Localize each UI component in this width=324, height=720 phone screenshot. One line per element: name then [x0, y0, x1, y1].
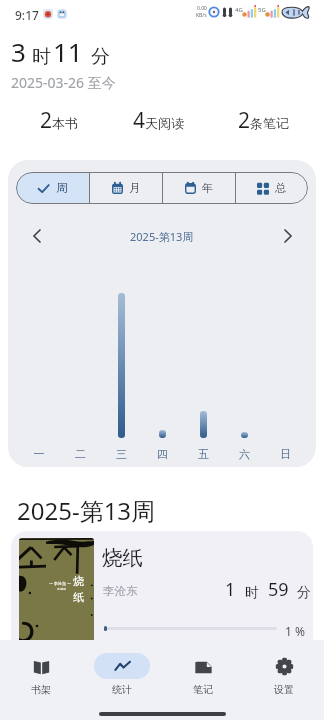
button[interactable]: 周	[16, 172, 89, 204]
staticText: 月	[129, 181, 141, 195]
staticText: 4天阅读	[133, 106, 185, 135]
staticText: 3	[11, 34, 26, 69]
staticText: 5G	[258, 6, 266, 14]
staticText: 2条笔记	[238, 106, 290, 135]
staticText: 分	[91, 45, 110, 69]
staticText: 书架	[31, 683, 51, 696]
staticText: 소설집	[57, 587, 66, 591]
button[interactable]: 上一周	[25, 225, 47, 247]
staticText: 烧	[73, 574, 84, 588]
staticText: 笔记	[193, 683, 213, 696]
staticText: 时	[245, 584, 259, 602]
staticText: 1	[225, 577, 236, 602]
button[interactable]: 2本书	[40, 106, 79, 135]
button[interactable]: 烧	[11, 531, 313, 661]
staticText: 2025-第13周	[17, 494, 156, 527]
button[interactable]: 设置	[243, 648, 324, 700]
staticText: 周	[56, 181, 68, 195]
staticText: 六	[224, 447, 265, 461]
staticText: 2本书	[40, 106, 79, 135]
staticText: 2025-第13周	[130, 229, 194, 244]
staticText: 1 %	[285, 623, 305, 639]
staticText: 设置	[274, 683, 294, 696]
staticText: 日	[265, 447, 306, 461]
staticText: 59	[268, 577, 289, 602]
button[interactable]: 笔记	[162, 648, 243, 700]
staticText: 统计	[112, 683, 132, 696]
staticText: 四	[142, 447, 183, 461]
staticText: 2025-03-26 至今	[11, 73, 116, 92]
staticText: 李沧东	[103, 584, 138, 598]
staticText: 三	[101, 447, 142, 461]
staticText: 时	[32, 45, 51, 69]
staticText: 纸	[73, 590, 84, 604]
staticText: 一 李沧东 一	[49, 581, 72, 586]
staticText: KB/s	[196, 12, 207, 19]
button[interactable]: 月	[90, 172, 162, 204]
staticText: 9:17	[15, 7, 39, 23]
staticText: 五	[183, 447, 224, 461]
staticText: 一	[18, 447, 60, 461]
staticText: 烧纸	[102, 545, 143, 571]
button[interactable]: 4天阅读	[133, 106, 185, 135]
staticText: 分	[297, 584, 311, 602]
button[interactable]: 总	[236, 172, 308, 204]
staticText: 年	[202, 181, 214, 195]
button[interactable]: 下一周	[277, 225, 299, 247]
staticText: 11	[53, 34, 83, 69]
button[interactable]: 2条笔记	[238, 106, 290, 135]
staticText: 总	[275, 181, 287, 195]
button[interactable]: 书架	[0, 648, 81, 700]
staticText: 二	[60, 447, 101, 461]
button[interactable]: 年	[163, 172, 235, 204]
button[interactable]: 统计	[81, 648, 162, 700]
staticText: 4G	[235, 6, 243, 14]
staticText: 0.00	[197, 5, 207, 12]
